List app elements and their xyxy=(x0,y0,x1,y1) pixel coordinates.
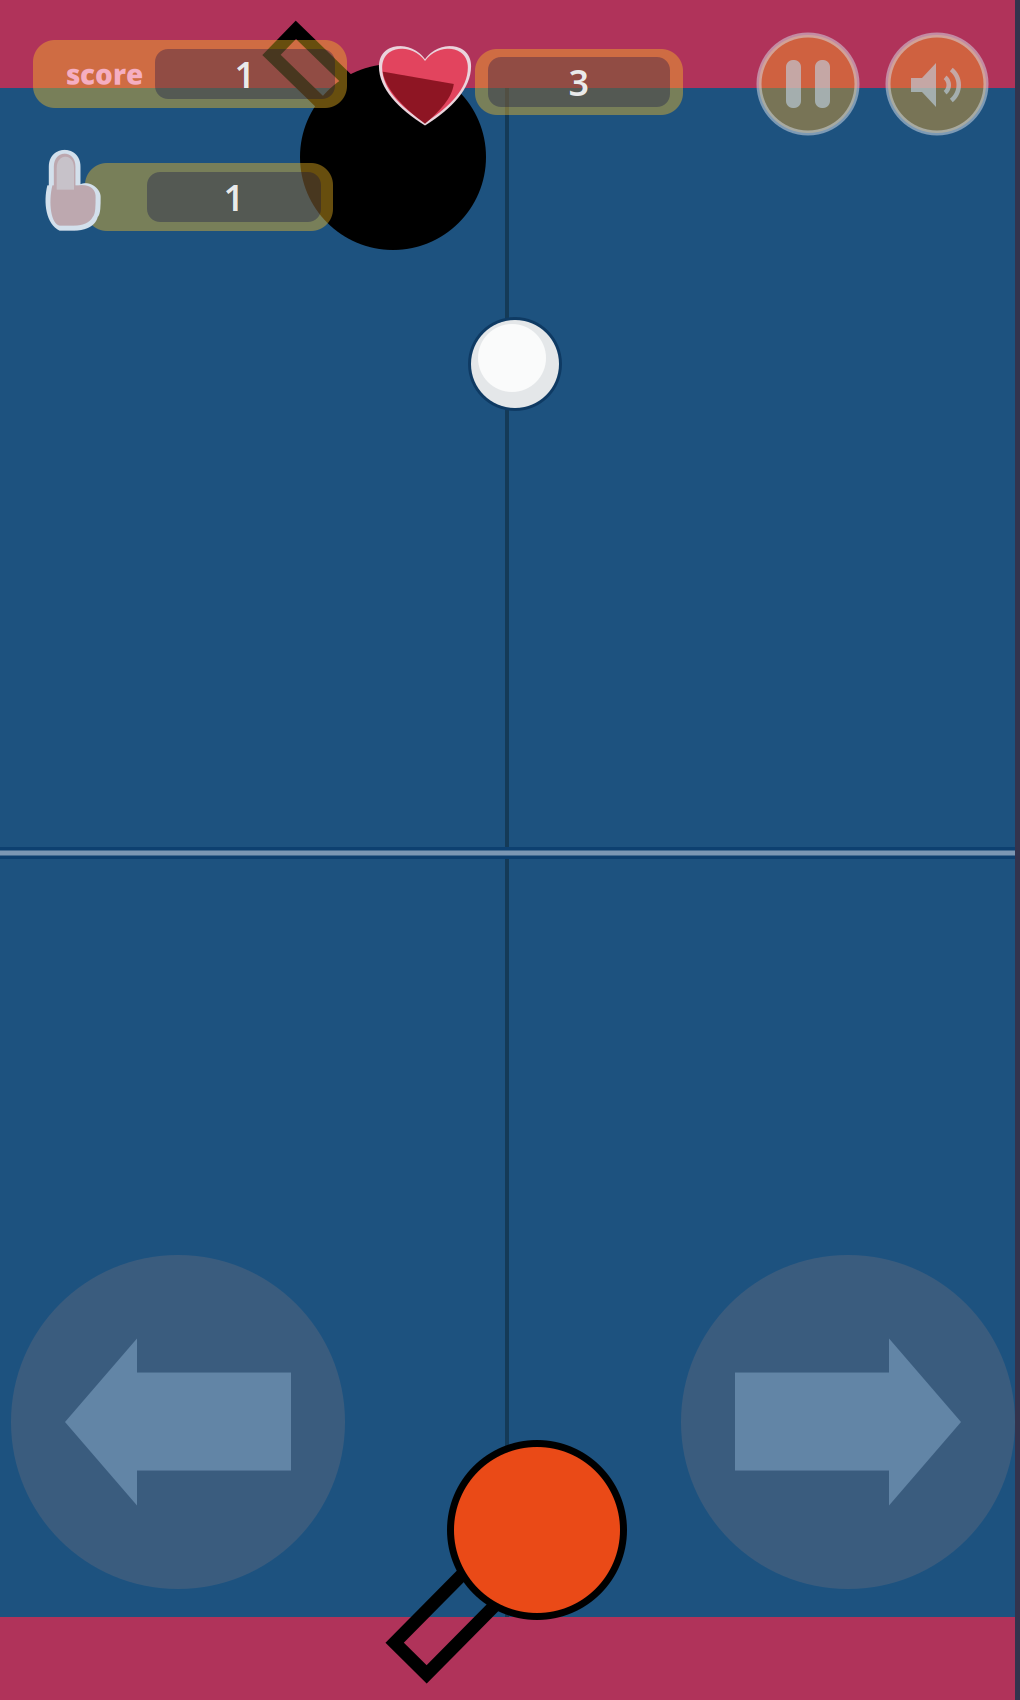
button[interactable]: Pause xyxy=(755,31,861,137)
button[interactable]: Move right xyxy=(680,1254,1016,1590)
button[interactable]: Move left xyxy=(10,1254,346,1590)
staticText: 1 xyxy=(223,173,244,221)
staticText: score xyxy=(66,55,143,93)
button[interactable]: Sound xyxy=(884,31,990,137)
staticText: 1 xyxy=(234,50,255,98)
staticText: 3 xyxy=(568,58,589,106)
